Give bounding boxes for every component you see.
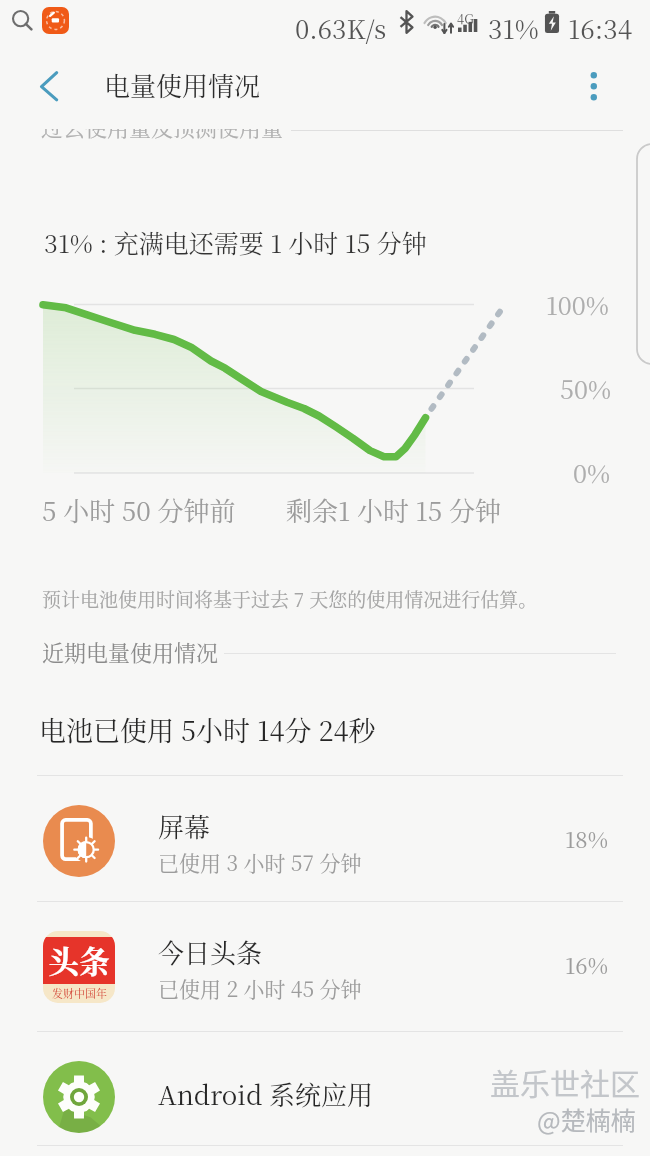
button[interactable]: 屏幕 xyxy=(0,775,650,902)
button[interactable]: Back xyxy=(17,48,73,120)
staticText: 50% xyxy=(560,370,611,406)
staticText: 剩余1 小时 15 分钟 xyxy=(286,491,501,528)
staticText: 已使用 3 小时 57 分钟 xyxy=(158,847,362,877)
staticText: 头条 xyxy=(48,937,110,982)
staticText: 31% : 充满电还需要 1 小时 15 分钟 xyxy=(44,224,427,260)
staticText: 过去使用量及预测使用量 xyxy=(41,111,284,143)
staticText: 近期电量使用情况 xyxy=(42,636,219,668)
staticText: 16% xyxy=(565,949,608,981)
staticText: 0.63K/s xyxy=(295,9,387,46)
staticText: 5 小时 50 分钟前 xyxy=(42,491,236,528)
staticText: 18% xyxy=(565,823,608,855)
staticText: 盖乐世社区 xyxy=(490,1060,640,1103)
staticText: @楚楠楠 xyxy=(537,1101,636,1137)
staticText: 预计电池使用时间将基于过去 7 天您的使用情况进行估算。 xyxy=(42,585,538,612)
staticText: 屏幕 xyxy=(158,807,211,844)
staticText: 电量使用情况 xyxy=(104,66,261,103)
button[interactable]: 头条 xyxy=(0,901,650,1028)
staticText: 电池已使用 5小时 14分 24秒 xyxy=(39,710,376,749)
staticText: 100% xyxy=(546,286,609,322)
staticText: 已使用 2 小时 45 分钟 xyxy=(158,973,362,1003)
staticText: 发财中国年 xyxy=(52,985,107,1001)
staticText: 16:34 xyxy=(568,9,633,46)
staticText: 31% xyxy=(488,9,539,46)
staticText: Android 系统应用 xyxy=(158,1075,373,1112)
button[interactable]: Android 系统应用 xyxy=(0,1031,650,1156)
staticText: 4G xyxy=(457,9,474,28)
staticText: 今日头条 xyxy=(158,933,263,970)
button[interactable]: More options xyxy=(570,48,622,120)
staticText: 0% xyxy=(573,454,611,490)
